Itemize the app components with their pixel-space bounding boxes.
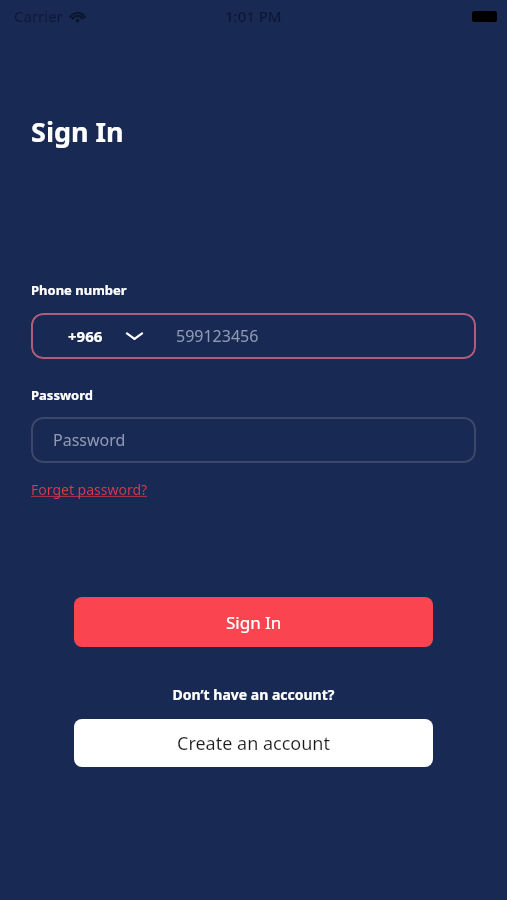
staticText: +966 — [68, 326, 103, 346]
staticText: 599123456 — [176, 325, 259, 347]
staticText: Sign In — [31, 113, 124, 150]
staticText: 1:01 PM — [225, 6, 282, 26]
button[interactable]: Create an account — [74, 719, 433, 767]
staticText: Phone number — [31, 281, 127, 299]
button[interactable]: Sign In — [74, 597, 433, 647]
other: Select country code — [125, 330, 144, 342]
staticText: Forget password? — [31, 480, 148, 499]
staticText: Password — [53, 429, 126, 451]
staticText: Password — [31, 386, 93, 404]
staticText: Don’t have an account? — [0, 685, 507, 704]
button[interactable]: Password — [31, 417, 476, 463]
button[interactable]: +966 — [31, 313, 476, 359]
staticText: Carrier — [14, 6, 63, 26]
staticText: Create an account — [177, 731, 330, 756]
button[interactable]: Forget password? — [31, 480, 148, 499]
staticText: Sign In — [226, 611, 282, 634]
